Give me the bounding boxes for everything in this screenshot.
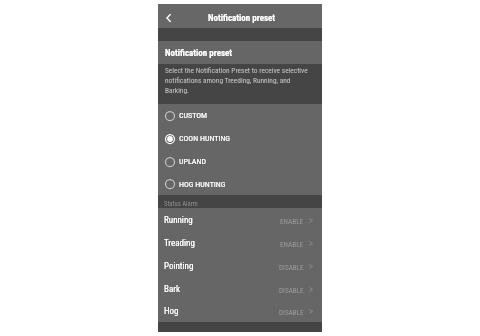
staticText: Treading: [164, 238, 195, 249]
button[interactable]: Back: [158, 4, 179, 28]
staticText: Bark: [164, 284, 181, 295]
staticText: UPLAND: [179, 157, 206, 166]
staticText: ENABLE: [280, 240, 304, 248]
staticText: Running: [164, 215, 193, 226]
staticText: DISABLE: [279, 263, 304, 271]
staticText: HOG HUNTING: [179, 180, 226, 189]
staticText: DISABLE: [279, 308, 304, 316]
button[interactable]: UPLAND: [158, 150, 322, 173]
staticText: COON HUNTING: [179, 134, 231, 143]
staticText: Pointing: [164, 261, 194, 272]
staticText: CUSTOM: [179, 111, 208, 120]
button[interactable]: CUSTOM: [158, 104, 322, 127]
staticText: Select the Notification Preset to receiv…: [165, 66, 309, 95]
button[interactable]: Bark: [158, 278, 322, 301]
button[interactable]: Pointing: [158, 255, 322, 278]
button[interactable]: HOG HUNTING: [158, 173, 322, 195]
button[interactable]: COON HUNTING: [158, 127, 322, 150]
staticText: Notification preset: [165, 48, 233, 59]
button[interactable]: Running: [158, 209, 322, 232]
staticText: DISABLE: [279, 286, 304, 294]
staticText: Status Alarm: [164, 200, 198, 208]
staticText: ENABLE: [280, 217, 304, 225]
button[interactable]: Hog: [158, 301, 322, 322]
staticText: Hog: [164, 306, 179, 317]
button[interactable]: Treading: [158, 232, 322, 255]
staticText: Notification preset: [208, 13, 276, 24]
